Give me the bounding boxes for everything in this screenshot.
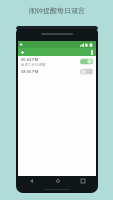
button[interactable]: More options xyxy=(90,49,94,56)
button[interactable]: 08:05 PM xyxy=(18,67,96,75)
button[interactable]: Add alarm xyxy=(20,50,25,55)
staticText: 闹钟提醒每日箴言 xyxy=(29,6,85,15)
staticText: 08:05 PM xyxy=(21,69,39,74)
staticText: 06:04 PM xyxy=(21,57,39,62)
button[interactable]: Home xyxy=(54,177,61,184)
button[interactable]: 06:04 PM xyxy=(18,56,96,67)
button[interactable]: Alarm on xyxy=(80,58,93,65)
staticText: 每周工作日提醒 xyxy=(21,63,46,67)
button[interactable]: Recent apps xyxy=(79,177,86,184)
button[interactable]: Alarm off xyxy=(80,68,93,75)
button[interactable]: Back xyxy=(28,177,35,184)
